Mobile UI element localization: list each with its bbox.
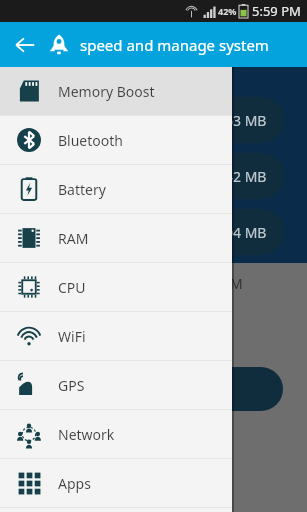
button[interactable]: Apps — [0, 459, 232, 507]
staticText: Battery — [58, 180, 106, 199]
staticText: 1463 MB — [209, 111, 267, 130]
button[interactable]: WiFi — [0, 312, 232, 360]
button[interactable]: CPU — [0, 263, 232, 311]
button[interactable]: GPS — [0, 361, 232, 409]
staticText: GPS — [58, 376, 85, 395]
button[interactable]: Back — [8, 28, 42, 62]
staticText: 804 MB — [217, 223, 267, 242]
staticText: 42% — [218, 5, 237, 17]
staticText: 5:59 PM — [252, 2, 301, 20]
staticText: 842 MB — [217, 167, 267, 186]
staticText: 5:59 PM — [190, 274, 243, 293]
staticText: RAM — [58, 229, 89, 248]
staticText: Apps — [58, 474, 91, 493]
staticText: CPU — [58, 278, 86, 297]
button[interactable]: RAM — [0, 214, 232, 262]
button[interactable] — [150, 367, 283, 411]
staticText: Memory Boost — [58, 82, 155, 101]
staticText: WiFi — [58, 327, 86, 346]
button[interactable]: Bluetooth — [0, 116, 232, 164]
button[interactable]: Memory Boost — [0, 67, 232, 115]
staticText: Network — [58, 425, 115, 444]
staticText: speed and manage system — [80, 35, 269, 55]
button[interactable]: Network — [0, 410, 232, 458]
button[interactable]: Battery — [0, 165, 232, 213]
staticText: Bluetooth — [58, 131, 123, 150]
